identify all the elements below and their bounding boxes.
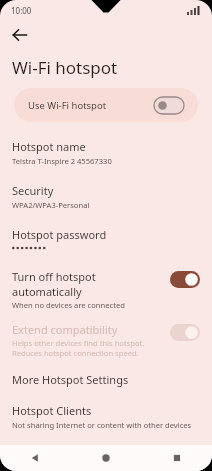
button[interactable]: Back xyxy=(23,446,47,470)
button[interactable]: Extend compatibility xyxy=(0,322,212,358)
button[interactable]: More Hotspot Settings xyxy=(0,370,212,389)
staticText: Use Wi-Fi hotspot xyxy=(28,99,154,112)
staticText: Hotspot password xyxy=(12,227,107,242)
staticText: Security xyxy=(12,183,54,198)
button[interactable]: Back xyxy=(5,20,35,50)
staticText: Extend compatibility xyxy=(12,322,118,337)
button[interactable]: Hotspot password xyxy=(0,227,212,253)
button[interactable]: Hotspot Clients xyxy=(0,403,212,430)
staticText: Not sharing Internet or content with oth… xyxy=(12,420,192,430)
button[interactable]: Turn off hotspot automatically xyxy=(0,269,212,310)
staticText: 10:00 xyxy=(11,5,32,16)
button[interactable]: Security xyxy=(0,183,212,210)
staticText: Telstra T-Inspire 2 45567330 xyxy=(12,156,112,166)
button[interactable]: Hotspot name xyxy=(0,139,212,166)
staticText: Hotspot Clients xyxy=(12,403,92,418)
staticText: Wi-Fi hotspot xyxy=(12,56,118,79)
staticText: Helps other devices find this hotspot. R… xyxy=(12,338,145,358)
staticText: Hotspot name xyxy=(12,139,86,154)
button[interactable]: Recent apps xyxy=(165,446,189,470)
button[interactable]: Home xyxy=(94,446,118,470)
staticText: WPA2/WPA3-Personal xyxy=(12,200,90,210)
staticText: Turn off hotspot automatically xyxy=(12,269,164,299)
staticText: More Hotspot Settings xyxy=(12,372,129,387)
button[interactable]: Use Wi-Fi hotspot xyxy=(14,88,198,122)
staticText: When no devices are connected xyxy=(12,300,125,310)
